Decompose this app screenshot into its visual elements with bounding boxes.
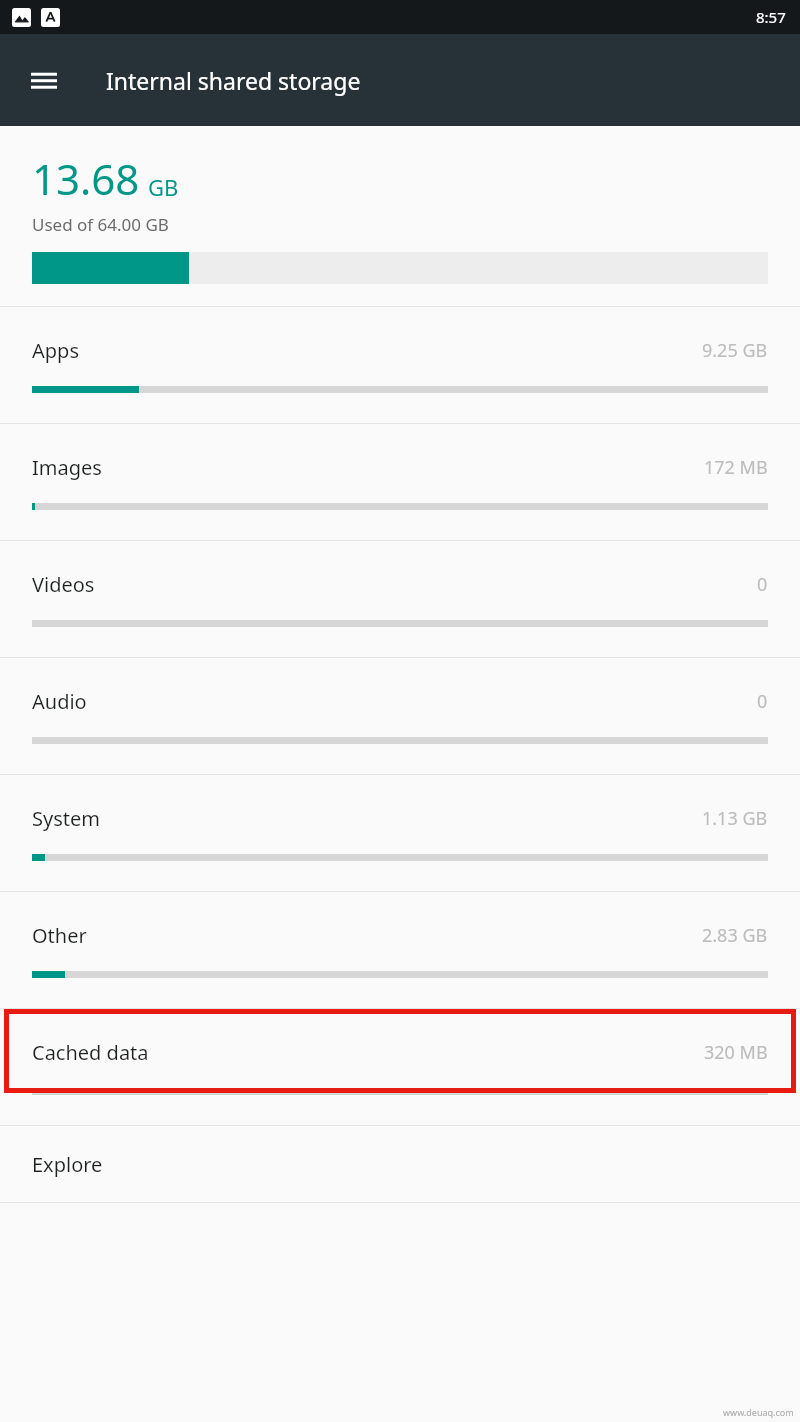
staticText: System: [32, 805, 702, 832]
staticText: Other: [32, 922, 702, 949]
staticText: 8:57: [756, 7, 786, 27]
staticText: 9.25 GB: [702, 338, 768, 363]
button[interactable]: Open navigation menu: [14, 50, 74, 110]
button[interactable]: System: [0, 775, 800, 891]
staticText: 13.68: [32, 150, 140, 207]
staticText: 0: [757, 572, 768, 597]
staticText: Internal shared storage: [106, 65, 361, 96]
button[interactable]: Cached data: [0, 1009, 800, 1125]
staticText: Images: [32, 454, 704, 481]
staticText: Apps: [32, 337, 702, 364]
staticText: www.deuaq.com: [723, 1406, 794, 1418]
staticText: Cached data: [32, 1039, 704, 1066]
button[interactable]: Videos: [0, 541, 800, 657]
staticText: Used of 64.00 GB: [32, 213, 169, 236]
staticText: Audio: [32, 688, 757, 715]
staticText: Explore: [32, 1151, 103, 1178]
staticText: 2.83 GB: [702, 923, 768, 948]
button[interactable]: Audio: [0, 658, 800, 774]
button[interactable]: Explore: [0, 1126, 800, 1202]
button[interactable]: Apps: [0, 307, 800, 423]
button[interactable]: Images: [0, 424, 800, 540]
staticText: Videos: [32, 571, 757, 598]
staticText: 172 MB: [704, 455, 768, 480]
staticText: 0: [757, 689, 768, 714]
staticText: GB: [148, 172, 179, 202]
staticText: 1.13 GB: [702, 806, 768, 831]
button[interactable]: Other: [0, 892, 800, 1008]
staticText: 320 MB: [704, 1040, 768, 1065]
